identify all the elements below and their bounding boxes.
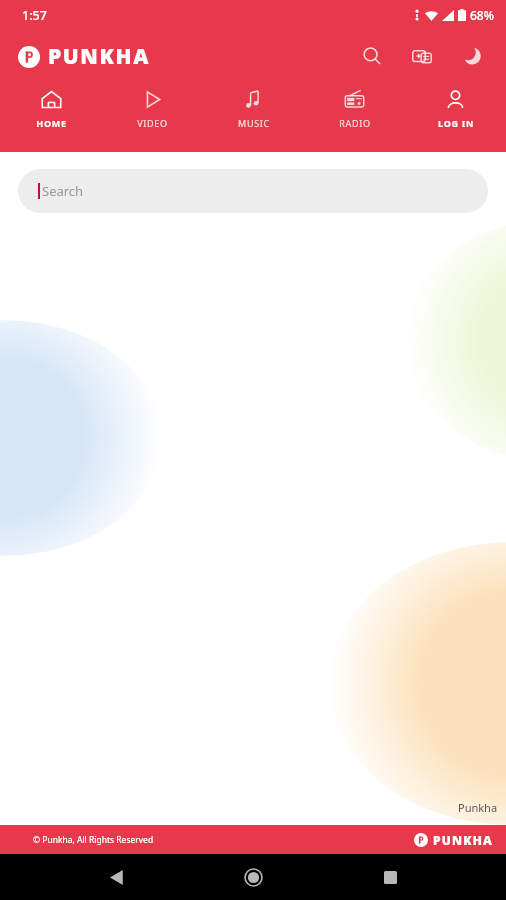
button[interactable]: HOME [0, 82, 102, 140]
button[interactable]: RADIO [304, 82, 405, 140]
button[interactable]: Home [233, 857, 273, 897]
staticText: LOG IN [438, 117, 474, 129]
staticText: 68% [470, 7, 494, 23]
button[interactable]: Dark mode [456, 40, 488, 72]
button[interactable]: PUNKHA [18, 42, 151, 71]
button[interactable]: Search [18, 169, 488, 213]
button[interactable]: PUNKHA [414, 832, 494, 848]
button[interactable]: Search [356, 40, 388, 72]
staticText: 1:57 [22, 7, 47, 24]
staticText: PUNKHA [48, 42, 151, 71]
button[interactable]: Media library [406, 40, 438, 72]
staticText: RADIO [339, 117, 371, 129]
staticText: MUSIC [238, 117, 270, 129]
button[interactable]: Recents [370, 857, 410, 897]
staticText: Search [42, 182, 84, 200]
button[interactable]: LOG IN [405, 82, 506, 140]
button[interactable]: MUSIC [203, 82, 304, 140]
staticText: PUNKHA [433, 832, 494, 848]
staticText: © Punkha, All Rights Reserved [33, 834, 154, 846]
staticText: VIDEO [137, 117, 168, 129]
staticText: HOME [36, 117, 67, 129]
button[interactable]: VIDEO [102, 82, 203, 140]
staticText: Punkha [458, 800, 498, 815]
button[interactable]: Back [97, 857, 137, 897]
